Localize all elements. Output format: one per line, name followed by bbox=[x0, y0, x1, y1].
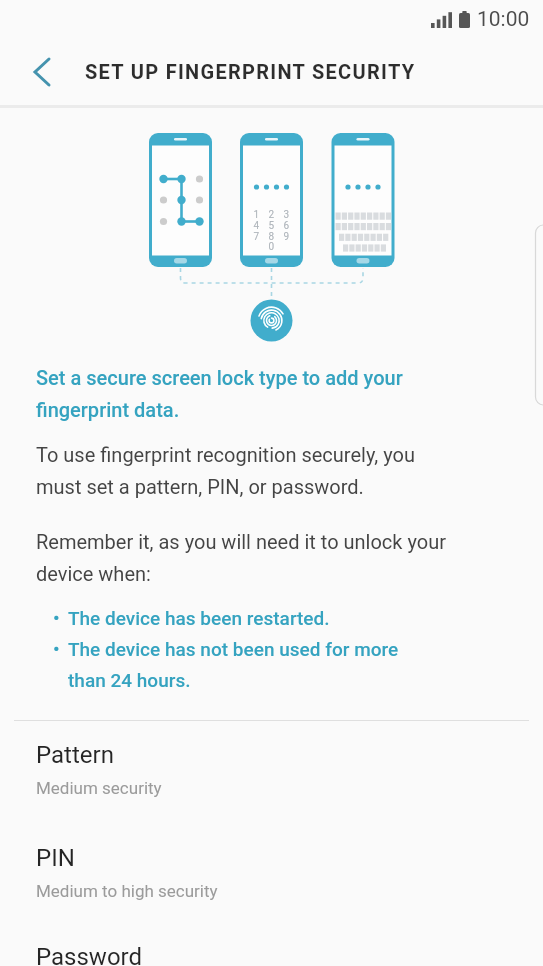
button[interactable]: Password bbox=[0, 926, 543, 966]
staticText: SET UP FINGERPRINT SECURITY bbox=[85, 60, 416, 83]
button[interactable]: Pattern bbox=[0, 721, 543, 823]
staticText: 10:00 bbox=[477, 7, 530, 32]
staticText: Pattern bbox=[36, 741, 114, 769]
staticText: Set a secure screen lock type to add you… bbox=[36, 366, 403, 422]
staticText: Medium to high security bbox=[36, 881, 218, 901]
button[interactable] bbox=[18, 48, 66, 96]
staticText: The device has not been used for more th… bbox=[68, 638, 399, 691]
staticText: Medium security bbox=[36, 778, 162, 798]
staticText: To use fingerprint recognition securely,… bbox=[36, 443, 415, 499]
staticText: • bbox=[53, 638, 60, 660]
staticText: Password bbox=[36, 943, 143, 966]
staticText: • bbox=[53, 607, 60, 629]
staticText: The device has been restarted. bbox=[68, 607, 330, 629]
button[interactable]: PIN bbox=[0, 823, 543, 926]
staticText: Remember it, as you will need it to unlo… bbox=[36, 530, 446, 586]
staticText: PIN bbox=[36, 844, 75, 872]
